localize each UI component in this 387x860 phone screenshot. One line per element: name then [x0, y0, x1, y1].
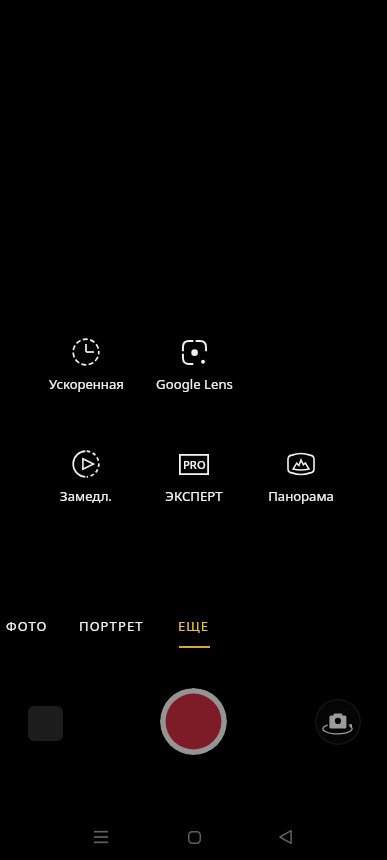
button[interactable]: Замедл.	[34, 443, 138, 505]
button[interactable]: Gallery	[28, 706, 63, 741]
button[interactable]: ЕЩЕ	[156, 611, 232, 648]
button[interactable]: Home	[170, 813, 218, 860]
staticText: Ускоренная	[49, 375, 124, 393]
button[interactable]: ПОРТРЕТ	[73, 611, 149, 635]
button[interactable]: Switch camera	[315, 699, 361, 745]
button[interactable]: Панорама	[249, 443, 353, 505]
button[interactable]: ФОТО	[1, 611, 53, 635]
staticText: Замедл.	[60, 487, 112, 505]
button[interactable]: Ускоренная	[34, 331, 138, 393]
button[interactable]: Take photo	[160, 688, 227, 755]
button[interactable]: Google Lens	[142, 331, 246, 393]
staticText: PRO	[183, 457, 206, 472]
staticText: ЭКСПЕРТ	[165, 487, 223, 505]
staticText: ЕЩЕ	[178, 617, 210, 635]
staticText: ФОТО	[6, 617, 48, 635]
staticText: ПОРТРЕТ	[79, 617, 144, 635]
button[interactable]: PRO	[142, 443, 246, 505]
staticText: Google Lens	[156, 375, 233, 393]
button[interactable]: Recent apps	[77, 813, 125, 860]
button[interactable]: Back	[261, 813, 309, 860]
staticText: Панорама	[268, 487, 334, 505]
